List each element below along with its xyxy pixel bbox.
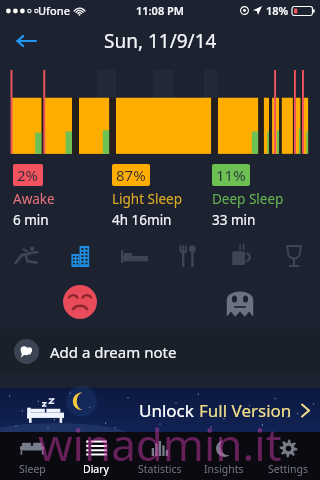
button[interactable]: Mood bad	[0, 275, 160, 329]
staticText: Insights	[204, 462, 244, 476]
staticText: 33 min	[212, 211, 256, 229]
staticText: Statistics	[138, 462, 182, 476]
staticText: Sleep	[19, 462, 46, 476]
staticText: 87%	[116, 165, 146, 185]
staticText: 4h 16min	[112, 211, 172, 229]
staticText: 6 min	[13, 211, 49, 229]
button[interactable]: Add a dream note	[0, 329, 320, 373]
button[interactable]: Sport	[0, 237, 54, 275]
button[interactable]: 87%	[112, 164, 212, 229]
button[interactable]: Unlock	[0, 388, 320, 432]
staticText: 2%	[17, 165, 39, 185]
button[interactable]: 2%	[13, 164, 112, 229]
button[interactable]: Sleep	[0, 432, 64, 480]
button[interactable]: Insights	[192, 432, 256, 480]
staticText: 11:08 PM	[136, 3, 185, 18]
button[interactable]: Food	[161, 237, 214, 275]
staticText: 11%	[216, 165, 246, 185]
staticText: Full Version	[199, 399, 292, 422]
staticText: Settings	[268, 462, 308, 476]
staticText: Unlock	[139, 399, 199, 422]
staticText: 18%	[266, 3, 289, 18]
button[interactable]: Settings	[256, 432, 320, 480]
staticText: Deep Sleep	[212, 190, 284, 208]
staticText: Ufone	[38, 3, 70, 18]
staticText: Diary	[83, 462, 109, 476]
button[interactable]: Work	[54, 237, 108, 275]
button[interactable]: Statistics	[128, 432, 192, 480]
button[interactable]: Coffee	[214, 237, 267, 275]
button[interactable]: Bed	[108, 237, 161, 275]
button[interactable]: Alcohol	[267, 237, 320, 275]
staticText: Awake	[13, 190, 55, 208]
button[interactable]: 11%	[212, 164, 312, 229]
button[interactable]: Back	[8, 23, 44, 59]
button[interactable]: Diary	[64, 432, 128, 480]
staticText: Light Sleep	[112, 190, 183, 208]
staticText: Sun, 11/9/14	[104, 28, 217, 54]
button[interactable]: Ghost	[160, 275, 320, 329]
staticText: Add a dream note	[50, 342, 177, 362]
staticText: winadmin.it	[38, 414, 282, 474]
